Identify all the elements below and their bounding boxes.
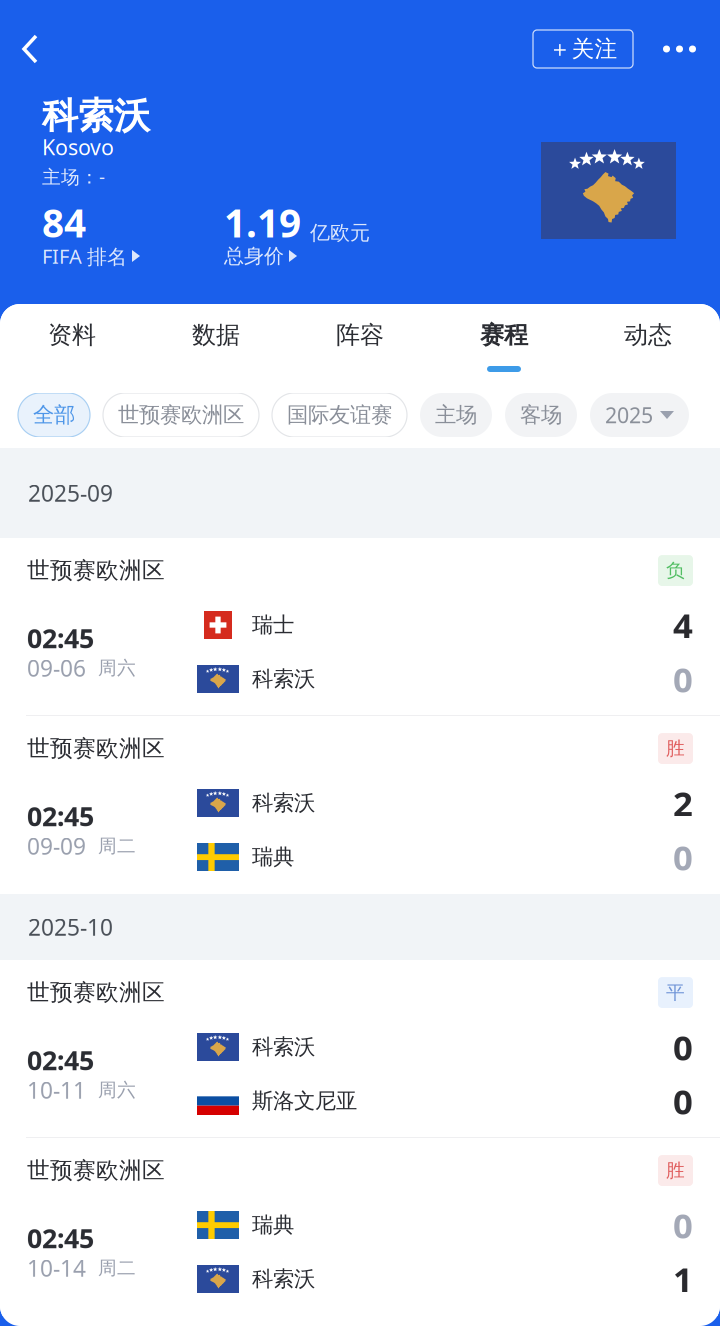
staticText: 周二: [98, 834, 136, 857]
button[interactable]: 世预赛欧洲区: [0, 716, 720, 894]
staticText: 02:45: [27, 620, 94, 656]
button[interactable]: 动态: [576, 304, 720, 382]
button[interactable]: 客场: [505, 393, 577, 437]
staticText: 0: [673, 656, 693, 702]
button[interactable]: 世预赛欧洲区: [0, 538, 720, 716]
staticText: 科索沃: [42, 94, 150, 138]
staticText: 09-09: [27, 831, 86, 861]
button[interactable]: 数据: [144, 304, 288, 382]
staticText: 1.19: [224, 197, 301, 248]
staticText: 02:45: [27, 1220, 94, 1256]
staticText: 2025-10: [28, 912, 113, 942]
staticText: 世预赛欧洲区: [27, 1157, 165, 1184]
staticText: 世预赛欧洲区: [27, 557, 165, 584]
staticText: 世预赛欧洲区: [27, 979, 165, 1006]
staticText: 赛程: [480, 320, 528, 350]
staticText: 数据: [192, 320, 240, 350]
staticText: 世预赛欧洲区: [27, 735, 165, 762]
staticText: 主场：-: [42, 164, 105, 189]
staticText: 1: [673, 1256, 693, 1302]
button[interactable]: 阵容: [288, 304, 432, 382]
button[interactable]: 全部: [18, 393, 90, 437]
button[interactable]: 世预赛欧洲区: [103, 393, 259, 437]
button[interactable]: ＋关注: [533, 30, 633, 68]
staticText: 胜: [666, 737, 685, 760]
staticText: 瑞典: [252, 844, 294, 870]
staticText: 周六: [98, 656, 136, 679]
staticText: 科索沃: [252, 666, 315, 692]
button[interactable]: 世预赛欧洲区: [0, 960, 720, 1138]
staticText: 周二: [98, 1256, 136, 1279]
staticText: 负: [666, 559, 685, 582]
staticText: 10-14: [27, 1253, 86, 1283]
staticText: 世预赛欧洲区: [118, 402, 244, 428]
button[interactable]: 世预赛欧洲区: [0, 1138, 720, 1316]
button[interactable]: 2025: [590, 393, 689, 437]
staticText: FIFA 排名: [42, 243, 127, 269]
staticText: 全部: [33, 402, 75, 428]
staticText: 84: [42, 197, 86, 248]
staticText: 0: [673, 1078, 693, 1124]
staticText: 平: [666, 981, 685, 1004]
staticText: 客场: [520, 402, 562, 428]
staticText: ＋关注: [548, 35, 617, 63]
button[interactable]: 资料: [0, 304, 144, 382]
button[interactable]: 国际友谊赛: [272, 393, 407, 437]
staticText: 资料: [48, 320, 96, 350]
staticText: 动态: [624, 320, 672, 350]
button[interactable]: 主场: [420, 393, 492, 437]
staticText: 瑞士: [252, 612, 294, 638]
button[interactable]: 赛程: [432, 304, 576, 382]
button[interactable]: More: [633, 28, 720, 70]
staticText: 亿欧元: [310, 221, 370, 245]
staticText: 02:45: [27, 1042, 94, 1078]
staticText: 总身价: [224, 244, 284, 268]
staticText: 02:45: [27, 798, 94, 834]
staticText: 国际友谊赛: [287, 402, 392, 428]
staticText: 09-06: [27, 653, 86, 683]
staticText: 10-11: [27, 1075, 86, 1105]
staticText: 2025-09: [28, 478, 113, 508]
staticText: Kosovo: [42, 133, 114, 161]
staticText: 0: [673, 1202, 693, 1248]
staticText: 科索沃: [252, 790, 315, 816]
button[interactable]: 84: [42, 205, 140, 267]
staticText: 瑞典: [252, 1212, 294, 1238]
staticText: 科索沃: [252, 1034, 315, 1060]
button[interactable]: 1.19: [224, 205, 370, 267]
staticText: 2025: [605, 401, 653, 429]
staticText: 4: [673, 602, 693, 648]
button[interactable]: Back: [0, 28, 56, 70]
staticText: 胜: [666, 1159, 685, 1182]
staticText: 0: [673, 1024, 693, 1070]
staticText: 主场: [435, 402, 477, 428]
staticText: 科索沃: [252, 1266, 315, 1292]
staticText: 斯洛文尼亚: [252, 1088, 357, 1114]
staticText: 周六: [98, 1078, 136, 1101]
staticText: 0: [673, 834, 693, 880]
staticText: 2: [673, 780, 693, 826]
staticText: 阵容: [336, 320, 384, 350]
